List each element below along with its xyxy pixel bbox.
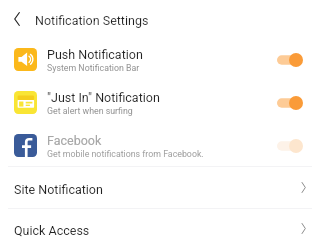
button[interactable]: Site Notification xyxy=(0,167,320,208)
button[interactable]: Push Notification xyxy=(0,38,320,81)
button[interactable]: "Just In" Notification switch xyxy=(268,89,311,117)
staticText: Notification Settings xyxy=(35,13,149,28)
staticText: Site Notification xyxy=(14,182,301,197)
button[interactable]: Push Notification switch xyxy=(268,46,311,74)
button[interactable]: Back xyxy=(0,2,34,36)
staticText: Quick Access xyxy=(14,223,301,238)
button[interactable]: "Just In" Notification xyxy=(0,81,320,124)
staticText: Get alert when surfing xyxy=(47,106,133,116)
button[interactable]: Quick Access xyxy=(0,209,320,248)
staticText: Push Notification xyxy=(47,47,143,62)
button[interactable]: Facebook xyxy=(0,124,320,167)
staticText: Get mobile notifications from Facebook. xyxy=(47,149,204,159)
staticText: System Notification Bar xyxy=(47,63,140,73)
staticText: Facebook xyxy=(47,133,102,148)
button[interactable]: Facebook switch xyxy=(268,132,311,160)
staticText: "Just In" Notification xyxy=(47,90,160,105)
